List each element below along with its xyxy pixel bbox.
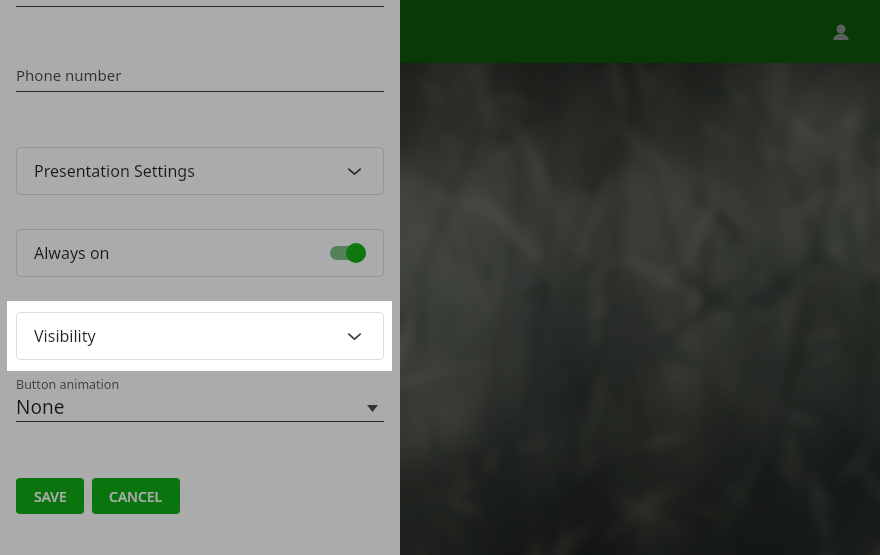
button[interactable]: Always on <box>16 229 384 277</box>
staticText: CANCEL <box>109 487 163 506</box>
staticText: Presentation Settings <box>34 160 195 182</box>
staticText: Button animation <box>16 376 120 393</box>
button[interactable]: CANCEL <box>92 478 180 514</box>
staticText: Phone number <box>16 65 122 85</box>
button[interactable]: Account <box>826 18 856 48</box>
staticText: Always on <box>34 242 110 264</box>
staticText: None <box>16 394 65 420</box>
staticText: Visibility <box>34 325 96 347</box>
button[interactable]: Presentation Settings <box>16 147 384 195</box>
button[interactable]: SAVE <box>16 478 84 514</box>
staticText: SAVE <box>34 487 67 506</box>
button[interactable]: Visibility <box>16 312 384 360</box>
